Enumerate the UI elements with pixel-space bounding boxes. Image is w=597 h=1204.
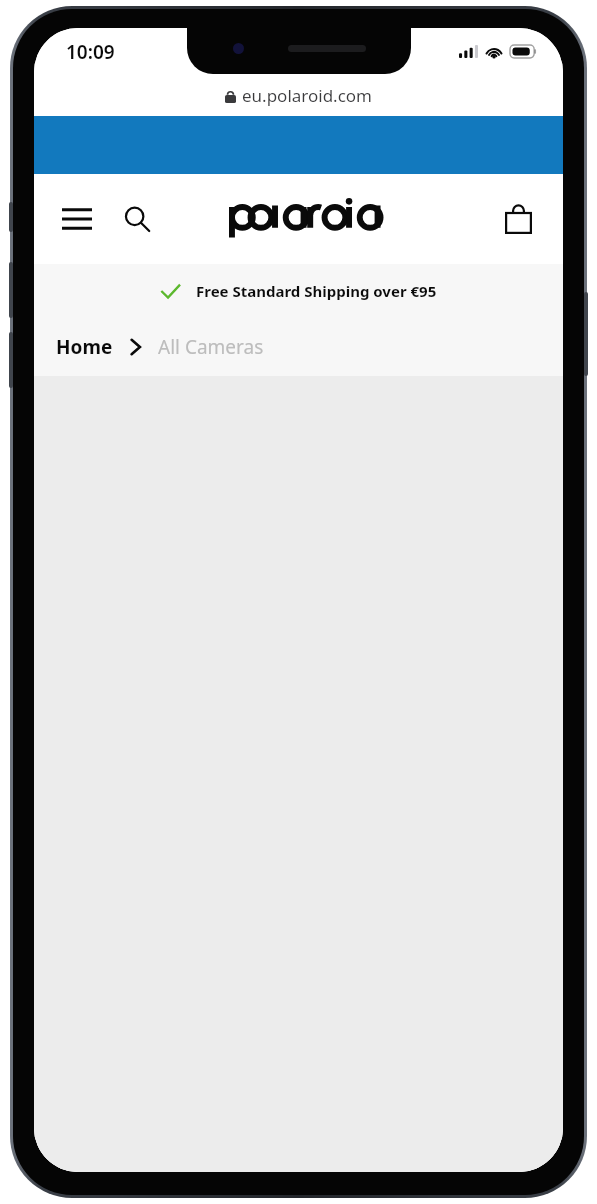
button[interactable]: Search <box>114 196 160 242</box>
staticText: Free Standard Shipping over €95 <box>196 281 437 301</box>
button[interactable]: Home <box>56 334 113 360</box>
staticText: eu.polaroid.com <box>242 84 373 107</box>
button[interactable] <box>229 199 369 239</box>
button[interactable]: Shopping bag <box>495 196 541 242</box>
button[interactable]: Free Standard Shipping over €95 <box>34 264 563 318</box>
button[interactable]: Menu <box>54 196 100 242</box>
staticText: 10:09 <box>66 39 115 65</box>
staticText: All Cameras <box>158 334 264 360</box>
button[interactable]: eu.polaroid.com <box>34 75 563 116</box>
staticText: Home <box>56 334 113 360</box>
